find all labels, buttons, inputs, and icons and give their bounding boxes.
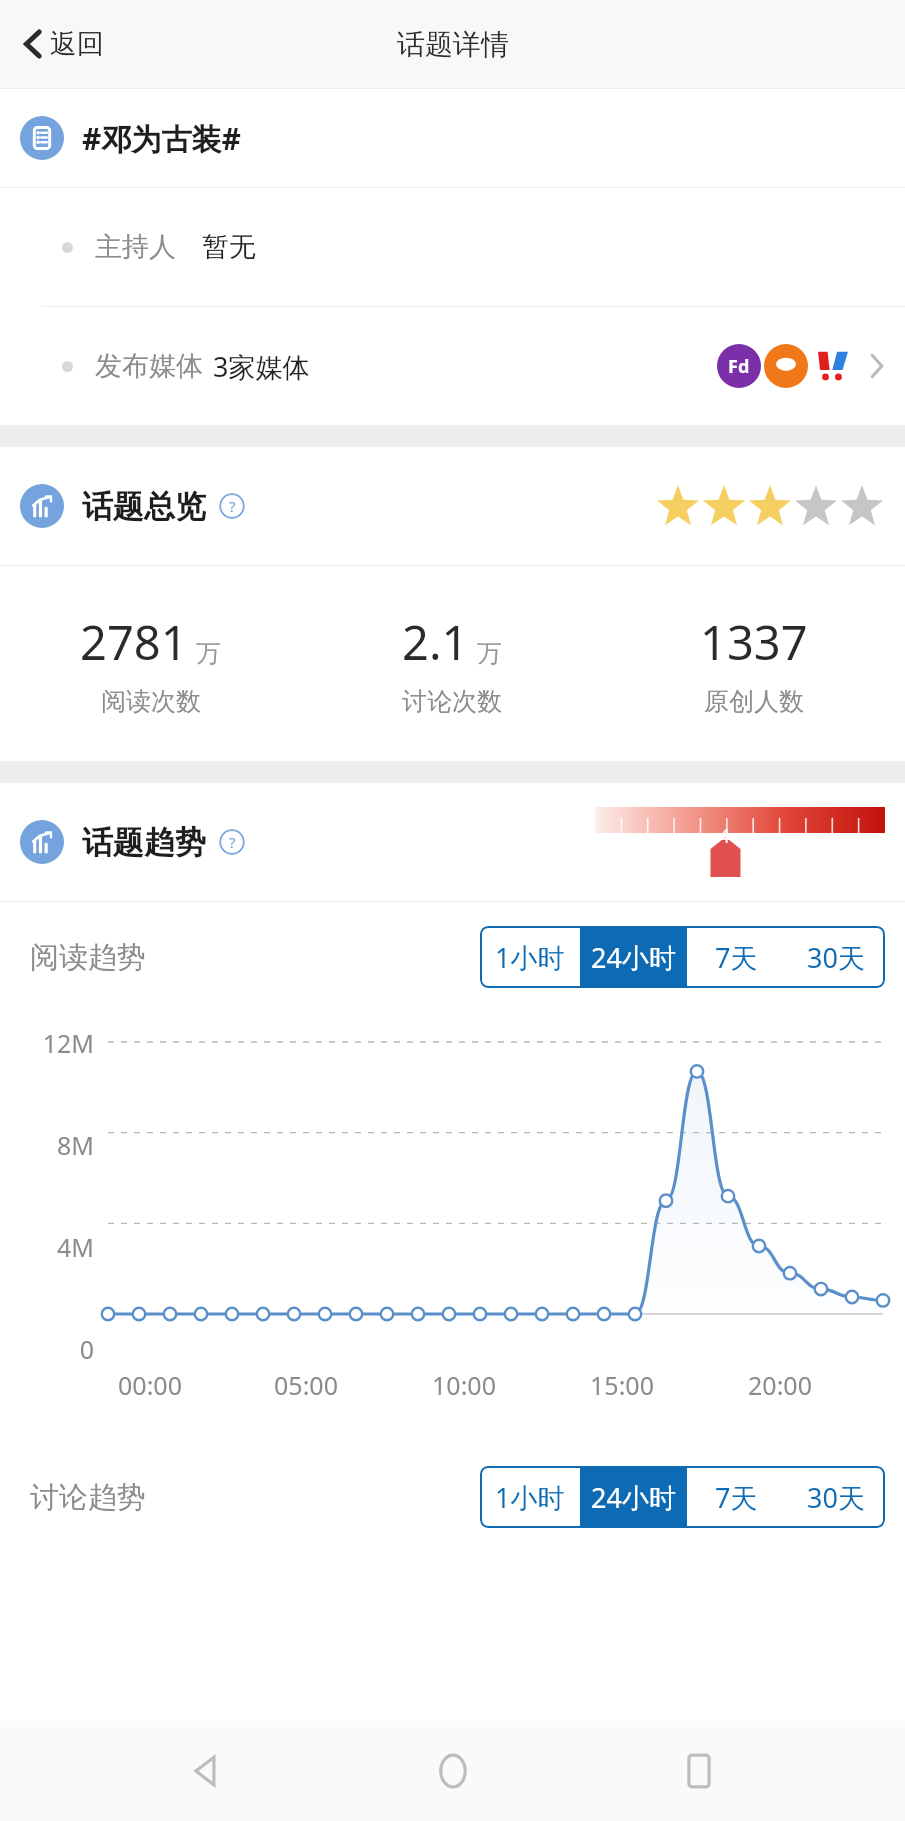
staticText: 主持人 bbox=[95, 230, 176, 264]
staticText: 4 bbox=[719, 823, 730, 849]
staticText: 阅读趋势 bbox=[30, 939, 146, 976]
staticText: ? bbox=[229, 496, 236, 516]
staticText: 2.1 bbox=[402, 610, 469, 674]
button[interactable]: 主持人 bbox=[0, 188, 905, 306]
staticText: 3家媒体 bbox=[213, 348, 310, 385]
button[interactable]: #邓为古装# bbox=[0, 89, 905, 187]
staticText: 24小时 bbox=[591, 939, 676, 976]
staticText: 返回 bbox=[50, 27, 104, 61]
button[interactable]: 1小时 bbox=[480, 926, 580, 988]
button[interactable]: 返回 bbox=[14, 21, 112, 67]
staticText: 20:00 bbox=[735, 1368, 825, 1402]
staticText: 发布媒体 bbox=[95, 349, 203, 383]
button[interactable]: 1337 bbox=[603, 610, 905, 717]
staticText: 12M bbox=[24, 1026, 94, 1060]
staticText: 1337 bbox=[700, 610, 808, 674]
button[interactable]: 30天 bbox=[786, 1466, 885, 1528]
staticText: 话题详情 bbox=[397, 27, 509, 62]
staticText: Fd bbox=[728, 354, 750, 379]
staticText: 7天 bbox=[715, 939, 758, 976]
button[interactable]: 帮助 bbox=[218, 492, 246, 520]
staticText: 讨论次数 bbox=[402, 686, 502, 717]
button[interactable]: 2.1 bbox=[301, 610, 603, 717]
staticText: 7天 bbox=[715, 1479, 758, 1516]
staticText: 话题趋势 bbox=[82, 823, 206, 862]
staticText: ? bbox=[229, 832, 236, 852]
button[interactable]: 24小时 bbox=[580, 1466, 687, 1528]
staticText: 2781 bbox=[80, 610, 188, 674]
staticText: 05:00 bbox=[261, 1368, 351, 1402]
staticText: 10:00 bbox=[419, 1368, 509, 1402]
staticText: 话题总览 bbox=[82, 487, 206, 526]
staticText: 4M bbox=[24, 1230, 94, 1264]
staticText: 原创人数 bbox=[704, 686, 804, 717]
button[interactable]: 7天 bbox=[687, 1466, 786, 1528]
staticText: 15:00 bbox=[577, 1368, 667, 1402]
staticText: 阅读次数 bbox=[101, 686, 201, 717]
staticText: 0 bbox=[24, 1332, 94, 1366]
staticText: 万 bbox=[196, 638, 221, 669]
button[interactable]: 24小时 bbox=[580, 926, 687, 988]
button[interactable]: 1小时 bbox=[480, 1466, 580, 1528]
button[interactable]: 主页 bbox=[413, 1731, 493, 1811]
staticText: 1小时 bbox=[495, 939, 565, 976]
button[interactable]: 帮助 bbox=[218, 828, 246, 856]
staticText: #邓为古装# bbox=[82, 118, 241, 159]
staticText: 讨论趋势 bbox=[30, 1479, 146, 1516]
button[interactable]: 返回 bbox=[166, 1731, 246, 1811]
staticText: 1小时 bbox=[495, 1479, 565, 1516]
staticText: 万 bbox=[477, 638, 502, 669]
staticText: 30天 bbox=[807, 939, 865, 976]
staticText: 30天 bbox=[807, 1479, 865, 1516]
button[interactable]: 2781 bbox=[0, 610, 301, 717]
staticText: 暂无 bbox=[202, 230, 256, 264]
staticText: 24小时 bbox=[591, 1479, 676, 1516]
button[interactable]: 7天 bbox=[687, 926, 786, 988]
staticText: 8M bbox=[24, 1128, 94, 1162]
staticText: 00:00 bbox=[105, 1368, 195, 1402]
button[interactable]: 最近应用 bbox=[659, 1731, 739, 1811]
button[interactable]: 30天 bbox=[786, 926, 885, 988]
button[interactable]: 发布媒体 bbox=[0, 307, 905, 425]
